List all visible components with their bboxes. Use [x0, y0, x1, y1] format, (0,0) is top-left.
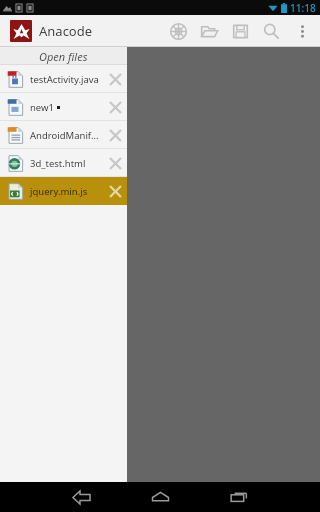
staticText: Anacode	[39, 22, 93, 40]
button[interactable]: Close testActivity.java	[103, 67, 127, 91]
button[interactable]: Back	[58, 482, 104, 512]
button[interactable]: jquery.min.js	[0, 177, 127, 205]
button[interactable]: Recent apps	[216, 482, 262, 512]
button[interactable]: 3d_test.html	[0, 149, 127, 177]
button[interactable]: testActivity.java	[0, 65, 127, 93]
button[interactable]: new1	[0, 93, 127, 121]
button[interactable]: Build	[163, 15, 194, 47]
button[interactable]: Close AndroidManifest.xml	[103, 123, 127, 147]
button[interactable]: Home	[137, 482, 183, 512]
button[interactable]: Open file	[194, 15, 225, 47]
staticText: testActivity.java	[30, 73, 99, 86]
button[interactable]: AndroidManifest.xml	[0, 121, 127, 149]
button[interactable]: Close new1	[103, 95, 127, 119]
button[interactable]: Close jquery.min.js	[103, 179, 127, 203]
staticText: Open files	[39, 49, 88, 64]
button[interactable]: Save	[225, 15, 256, 47]
staticText: jquery.min.js	[30, 185, 88, 198]
staticText: AndroidManifest.xml	[30, 129, 103, 142]
button[interactable]: Close 3d_test.html	[103, 151, 127, 175]
staticText: 3d_test.html	[30, 157, 86, 170]
button[interactable]: Search	[256, 15, 287, 47]
staticText: new1	[30, 101, 54, 114]
staticText: 11:18	[290, 1, 316, 15]
button[interactable]: More options	[287, 15, 318, 47]
button[interactable]: Anacode	[6, 18, 97, 44]
